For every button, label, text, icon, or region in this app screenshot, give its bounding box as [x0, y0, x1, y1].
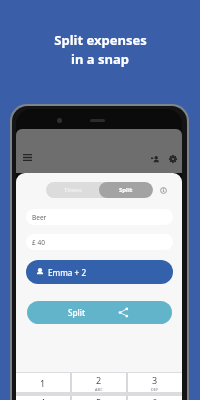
staticText: £ 40: [32, 238, 45, 247]
button[interactable]: Info: [157, 184, 170, 197]
button[interactable]: 6: [128, 396, 182, 400]
button[interactable]: 4: [16, 396, 70, 400]
staticText: 4: [40, 396, 46, 400]
staticText: Split expenses: [54, 31, 147, 49]
button[interactable]: Times: [46, 182, 99, 198]
staticText: Split: [68, 307, 86, 318]
staticText: DEF: [151, 387, 159, 392]
button[interactable]: Emma + 2: [26, 260, 173, 284]
staticText: 2: [96, 374, 102, 386]
staticText: 6: [152, 396, 158, 400]
button[interactable]: Beer: [26, 209, 173, 225]
button[interactable]: 2: [72, 373, 126, 392]
button[interactable]: Split: [99, 182, 153, 198]
staticText: Times: [64, 186, 82, 194]
staticText: Beer: [32, 213, 47, 222]
staticText: 1: [40, 377, 46, 389]
staticText: 5: [96, 396, 102, 400]
button[interactable]: Split: [27, 301, 172, 324]
staticText: Emma + 2: [48, 267, 87, 278]
button[interactable]: 5: [72, 396, 126, 400]
staticText: 3: [152, 374, 158, 386]
button[interactable]: £ 40: [26, 234, 173, 250]
button[interactable]: 3: [128, 373, 182, 392]
button[interactable]: Add person: [148, 152, 162, 166]
button[interactable]: Settings: [166, 152, 180, 166]
button[interactable]: 1: [16, 373, 70, 392]
staticText: ABC: [95, 387, 103, 392]
staticText: in a snap: [71, 50, 129, 68]
button[interactable]: Menu: [21, 151, 33, 163]
staticText: Split: [119, 186, 133, 194]
